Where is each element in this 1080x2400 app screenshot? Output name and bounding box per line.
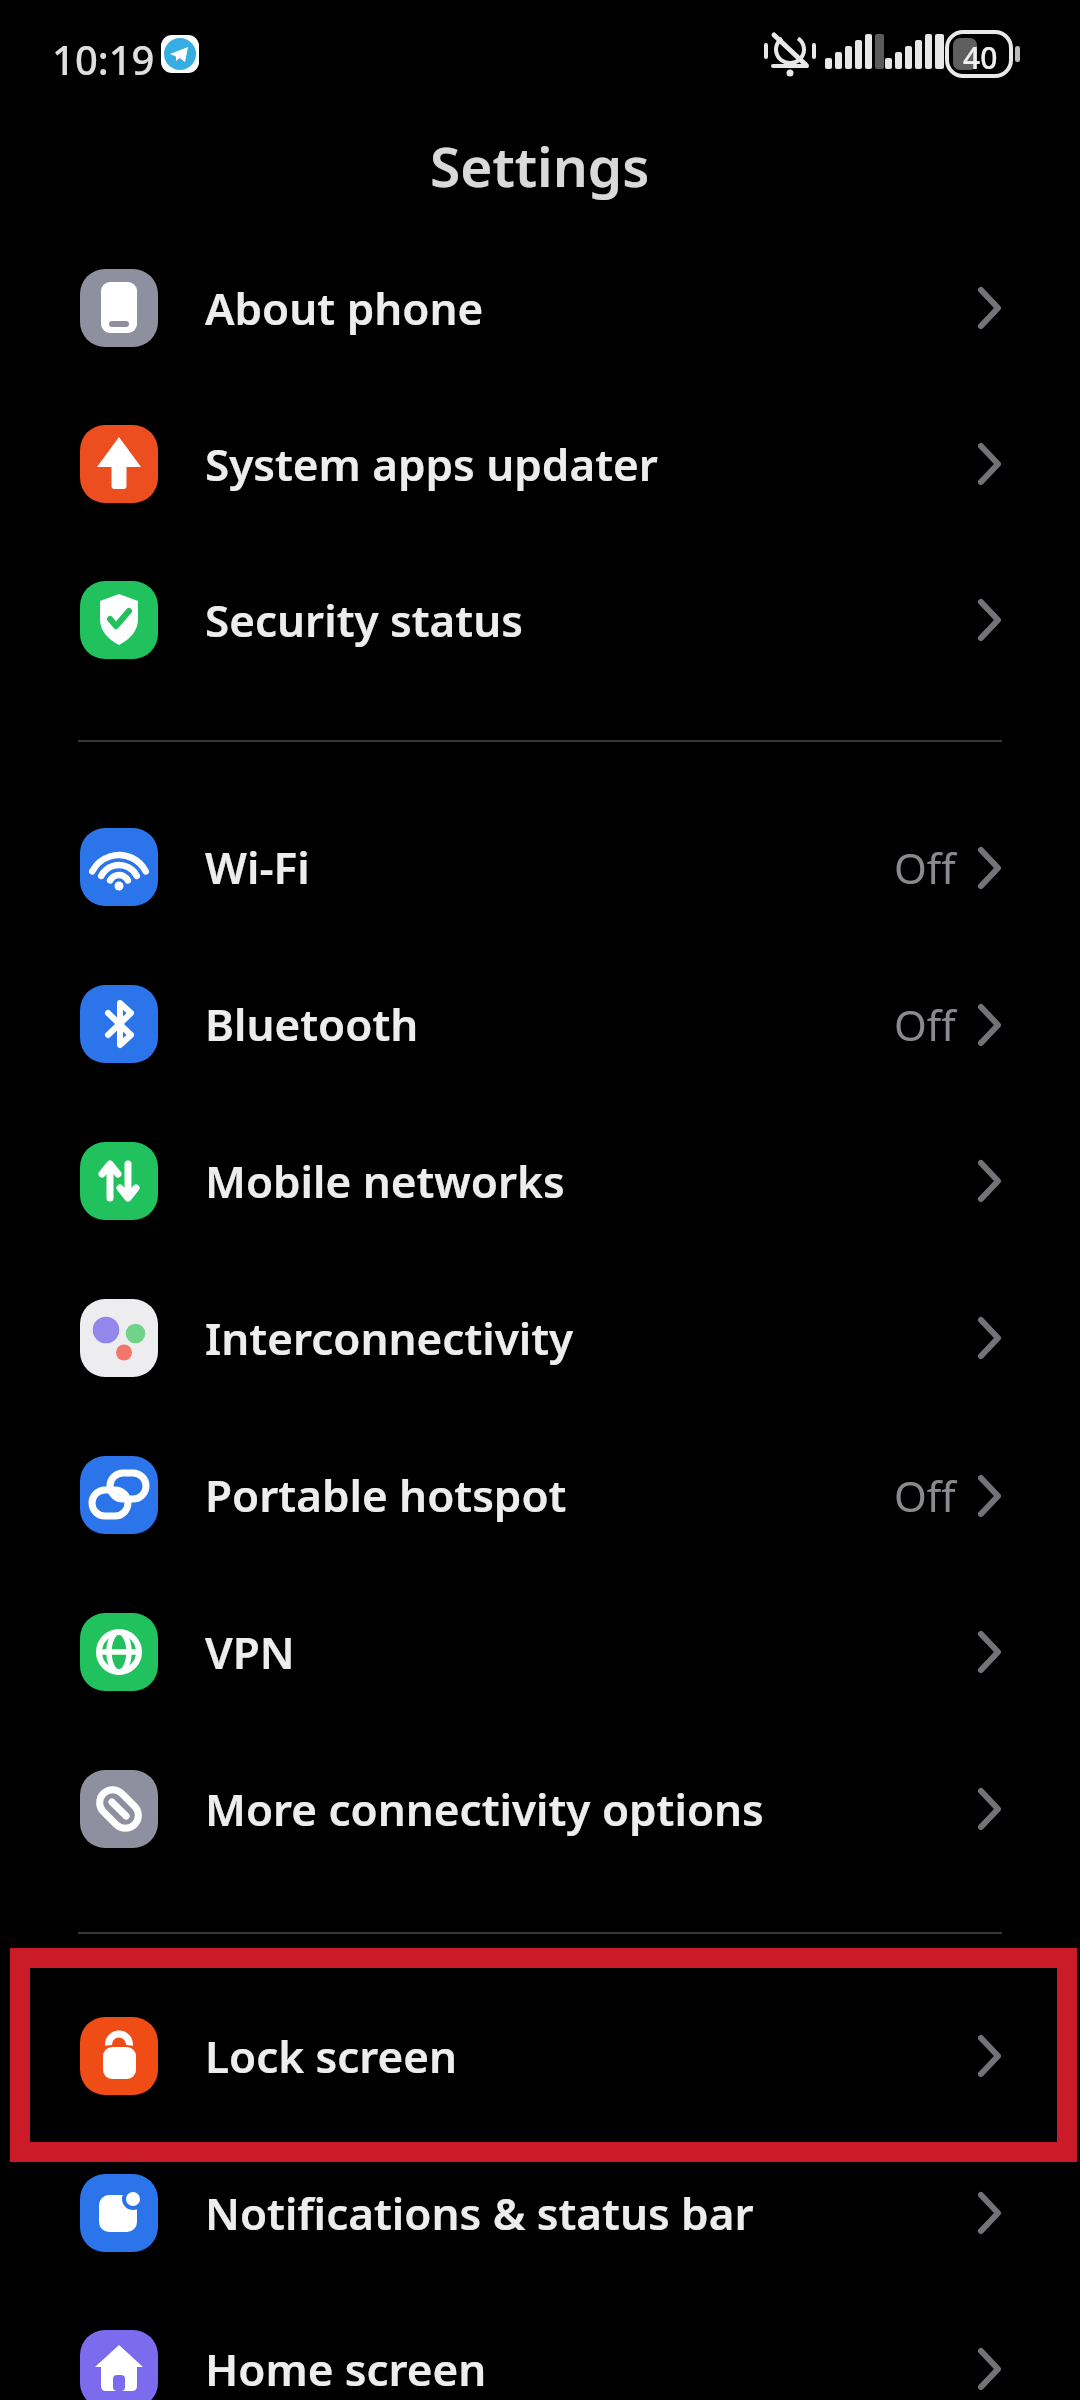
button[interactable]: About phone <box>0 230 1080 386</box>
staticText: About phone <box>205 278 484 338</box>
staticText: Mobile networks <box>205 1151 565 1211</box>
staticText: Notifications & status bar <box>205 2183 754 2243</box>
staticText: 10:19 <box>52 32 155 86</box>
staticText: Interconnectivity <box>205 1308 574 1368</box>
staticText: More connectivity options <box>205 1779 764 1839</box>
staticText: VPN <box>205 1622 295 1682</box>
staticText: System apps updater <box>205 434 658 494</box>
staticText: Off <box>894 839 956 896</box>
button[interactable]: Security status <box>0 542 1080 698</box>
staticText: Wi-Fi <box>205 837 310 897</box>
staticText: Settings <box>430 128 650 203</box>
button[interactable]: More connectivity options <box>0 1731 1080 1887</box>
staticText: Off <box>894 996 956 1053</box>
button[interactable]: Wi-Fi <box>0 789 1080 945</box>
staticText: Off <box>894 1467 956 1524</box>
button[interactable]: Portable hotspot <box>0 1417 1080 1573</box>
button[interactable]: Bluetooth <box>0 946 1080 1102</box>
staticText: Home screen <box>205 2339 487 2399</box>
button[interactable]: Lock screen <box>0 1978 1080 2134</box>
button[interactable]: System apps updater <box>0 386 1080 542</box>
staticText: Lock screen <box>205 2026 458 2086</box>
button[interactable]: Home screen <box>0 2291 1080 2400</box>
staticText: Security status <box>205 590 523 650</box>
staticText: 40 <box>963 37 998 78</box>
staticText: Bluetooth <box>205 994 419 1054</box>
button[interactable]: VPN <box>0 1574 1080 1730</box>
button[interactable]: Interconnectivity <box>0 1260 1080 1416</box>
button[interactable]: Notifications & status bar <box>0 2135 1080 2291</box>
staticText: Portable hotspot <box>205 1465 567 1525</box>
button[interactable]: Mobile networks <box>0 1103 1080 1259</box>
